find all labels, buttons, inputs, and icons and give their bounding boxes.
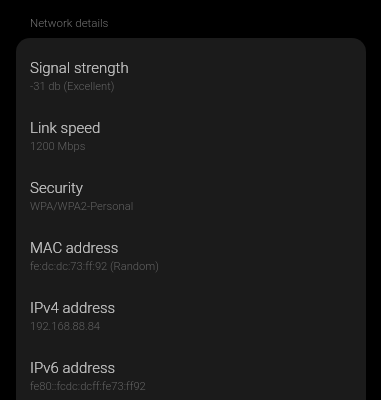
staticText: 192.168.88.84 (30, 320, 101, 333)
staticText: Link speed (30, 119, 101, 137)
button[interactable]: MAC address (16, 239, 366, 299)
staticText: IPv4 address (30, 299, 116, 317)
staticText: fe:dc:dc:73:ff:92 (Random) (30, 260, 159, 273)
button[interactable]: Link speed (16, 119, 366, 179)
staticText: 1200 Mbps (30, 140, 86, 153)
button[interactable]: IPv6 address (16, 359, 366, 400)
staticText: WPA/WPA2-Personal (30, 200, 134, 213)
button[interactable]: Security (16, 179, 366, 239)
button[interactable]: IPv4 address (16, 299, 366, 359)
button[interactable]: Signal strength (16, 59, 366, 119)
staticText: Security (30, 179, 83, 197)
staticText: IPv6 address (30, 359, 116, 377)
staticText: fe80::fcdc:dcff:fe73:ff92 (30, 380, 146, 393)
staticText: -31 db (Excellent) (30, 80, 115, 93)
staticText: MAC address (30, 239, 119, 257)
staticText: Network details (30, 16, 109, 29)
staticText: Signal strength (30, 59, 129, 77)
